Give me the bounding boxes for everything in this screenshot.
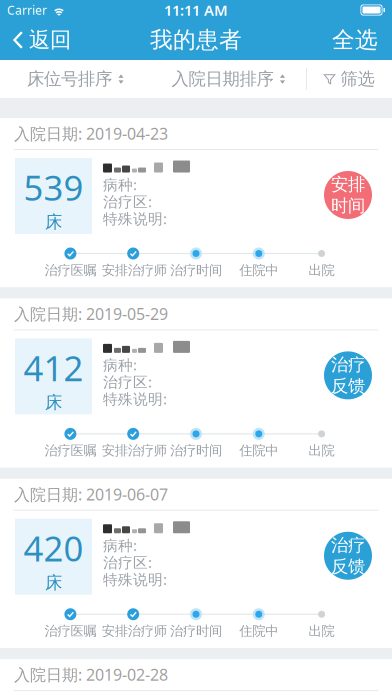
- staticText: 539: [23, 164, 83, 210]
- staticText: 治疗区:: [103, 552, 152, 572]
- staticText: 安排治疗师: [102, 623, 167, 639]
- staticText: 入院日期: 2019-04-23: [14, 123, 168, 144]
- button[interactable]: 412: [0, 330, 392, 468]
- staticText: 我的患者: [150, 26, 242, 54]
- staticText: 安排治疗师: [102, 442, 167, 459]
- staticText: 安排治疗师: [102, 262, 167, 278]
- staticText: 出院: [309, 442, 335, 459]
- staticText: 病种:: [103, 175, 137, 194]
- staticText: 床: [45, 392, 62, 413]
- staticText: 床: [45, 572, 62, 593]
- staticText: 治疗: [331, 354, 365, 375]
- staticText: 特殊说明:: [103, 209, 167, 228]
- staticText: 安排: [331, 174, 365, 195]
- staticText: 住院中: [239, 442, 278, 459]
- staticText: 床位号排序: [27, 68, 112, 90]
- staticText: Carrier: [7, 2, 47, 18]
- button[interactable]: 入院日期排序: [151, 60, 306, 98]
- staticText: 反馈: [331, 375, 365, 397]
- staticText: 入院日期: 2019-06-07: [14, 484, 168, 505]
- staticText: 治疗医嘱: [44, 442, 96, 459]
- staticText: 病种:: [103, 355, 137, 375]
- staticText: 反馈: [331, 556, 365, 577]
- button[interactable]: 返回: [0, 20, 81, 60]
- staticText: 出院: [309, 623, 335, 639]
- button[interactable]: 筛选: [306, 60, 392, 98]
- staticText: 床: [45, 211, 62, 233]
- staticText: 412: [23, 345, 83, 391]
- button[interactable]: 420: [0, 511, 392, 648]
- staticText: 治疗时间: [170, 623, 222, 639]
- staticText: 特殊说明:: [103, 569, 167, 589]
- staticText: 11:11 AM: [164, 0, 228, 20]
- button[interactable]: 539: [0, 150, 392, 287]
- staticText: 420: [23, 525, 83, 571]
- staticText: 出院: [309, 262, 335, 278]
- staticText: 治疗医嘱: [44, 262, 96, 278]
- staticText: 住院中: [239, 623, 278, 639]
- staticText: 治疗区:: [103, 372, 152, 392]
- staticText: 治疗医嘱: [44, 623, 96, 639]
- staticText: 全选: [332, 26, 378, 54]
- button[interactable]: 全选: [320, 20, 392, 60]
- staticText: 治疗: [331, 534, 365, 556]
- staticText: 入院日期: 2019-02-28: [14, 664, 168, 685]
- staticText: 治疗区:: [103, 192, 152, 211]
- button[interactable]: 床位号排序: [0, 60, 151, 98]
- staticText: 特殊说明:: [103, 389, 167, 409]
- staticText: 治疗时间: [170, 442, 222, 459]
- staticText: 入院日期: 2019-05-29: [14, 303, 168, 324]
- staticText: 入院日期排序: [171, 68, 273, 90]
- staticText: 治疗时间: [170, 262, 222, 278]
- staticText: 病种:: [103, 535, 137, 555]
- staticText: 筛选: [340, 68, 374, 90]
- staticText: 时间: [331, 195, 365, 216]
- staticText: 住院中: [239, 262, 278, 278]
- staticText: 返回: [29, 27, 71, 53]
